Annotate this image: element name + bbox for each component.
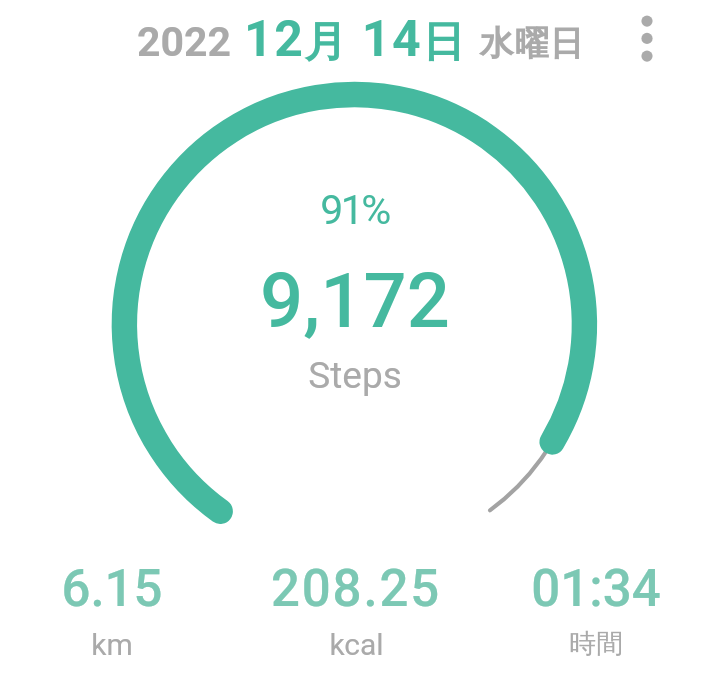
staticText: 9,172 [260,256,450,345]
button[interactable]: 2022 [120,0,600,78]
staticText: 2022 [137,18,232,66]
staticText: 01:34 [531,559,661,619]
staticText: Steps [308,354,402,397]
staticText: 水曜日 [479,22,584,65]
staticText: 12月 14日 [244,10,466,69]
staticText: 208.25 [271,559,441,619]
button[interactable]: 01:34 [486,559,706,671]
staticText: 91% [320,186,389,234]
staticText: 時間 [569,627,623,661]
button[interactable]: 6.15 [2,559,222,671]
staticText: 6.15 [61,559,163,619]
other: Daily step goal 91 percent complete [0,0,709,675]
button[interactable]: 208.25 [246,559,466,671]
button[interactable]: More options [623,15,671,63]
staticText: km [91,627,133,662]
staticText: kcal [329,627,384,662]
